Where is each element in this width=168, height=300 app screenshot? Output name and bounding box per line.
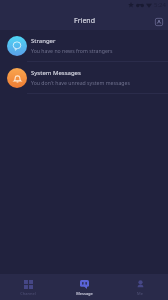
staticText: Me (137, 291, 143, 296)
button[interactable]: Contacts (151, 14, 166, 29)
staticText: Stranger (31, 37, 56, 45)
staticText: Friend (74, 16, 95, 26)
button[interactable]: Message (56, 274, 112, 300)
staticText: Message (76, 291, 93, 296)
staticText: System Messages (31, 69, 81, 77)
staticText: You don't have unread system messages (31, 79, 130, 86)
staticText: You have no news from strangers (31, 47, 113, 54)
button[interactable]: System Messages (0, 62, 168, 93)
button[interactable]: Stranger (0, 30, 168, 61)
button[interactable]: Me (112, 274, 168, 300)
button[interactable]: Channel (0, 274, 56, 300)
staticText: Channel (20, 291, 36, 296)
staticText: 5:24 (154, 1, 166, 9)
